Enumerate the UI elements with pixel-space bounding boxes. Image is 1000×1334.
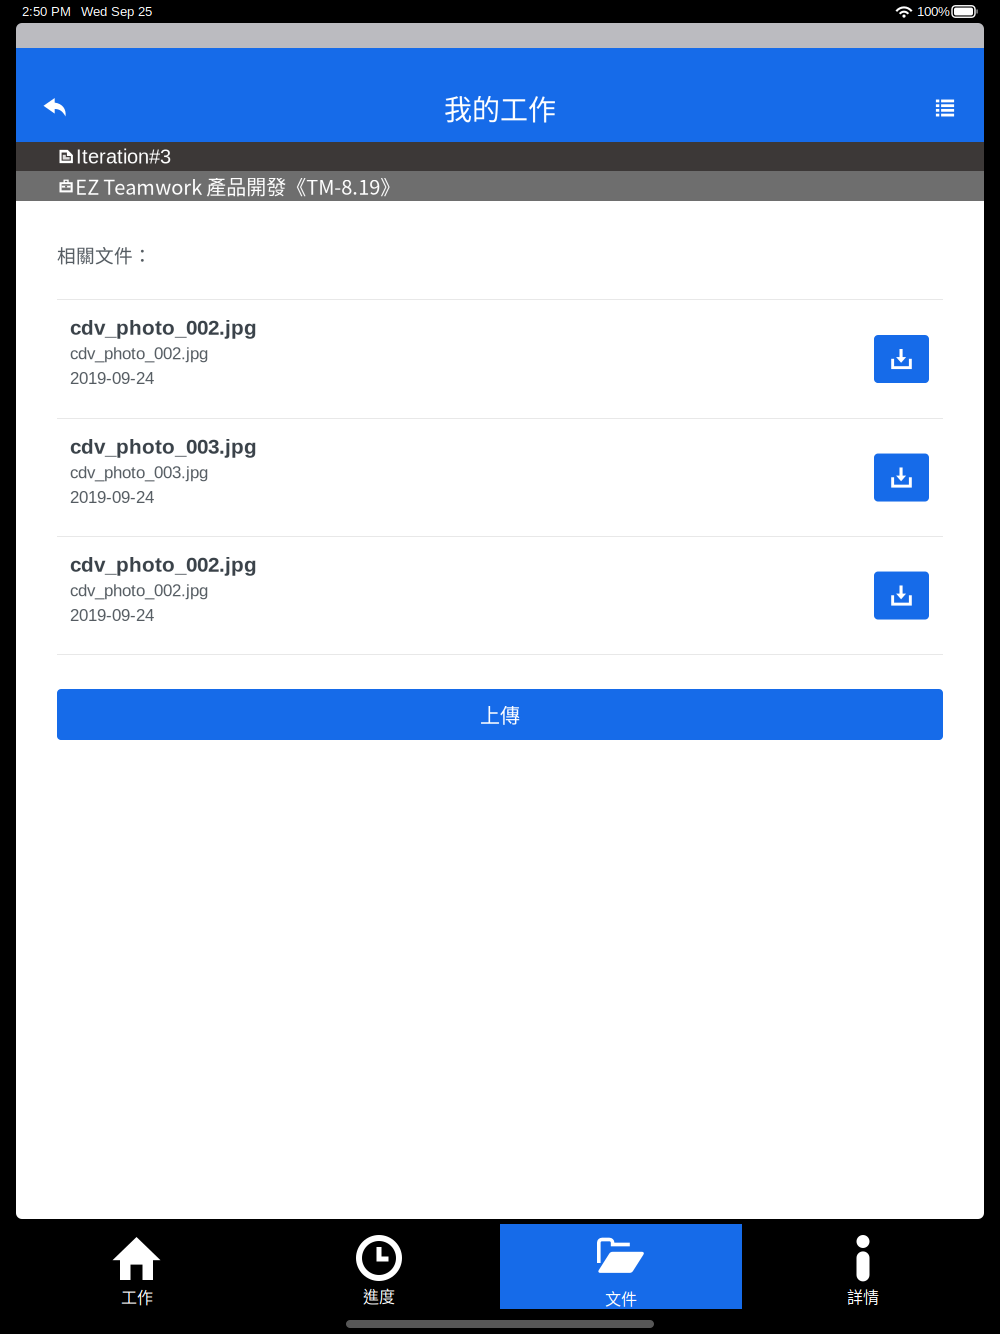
button[interactable]: Menu (906, 48, 984, 142)
staticText: 詳情 (847, 1284, 879, 1308)
button[interactable]: 詳情 (742, 1224, 984, 1309)
staticText: Wed Sep 25 (81, 4, 152, 19)
staticText: 文件 (605, 1286, 637, 1310)
button[interactable]: 進度 (258, 1224, 500, 1309)
staticText: 2019-09-24 (70, 488, 154, 507)
button[interactable]: 上傳 (57, 689, 943, 740)
staticText: 2019-09-24 (70, 606, 154, 625)
button[interactable]: Download cdv_photo_002.jpg (874, 571, 929, 619)
staticText: 我的工作 (444, 88, 556, 128)
staticText: 2:50 PM (22, 4, 71, 19)
staticText: cdv_photo_002.jpg (70, 344, 208, 363)
staticText: 相關文件： (57, 241, 152, 268)
staticText: 2019-09-24 (70, 369, 154, 388)
staticText: 工作 (121, 1285, 153, 1308)
button[interactable]: 文件 (500, 1224, 742, 1309)
staticText: 上傳 (480, 700, 520, 729)
staticText: cdv_photo_002.jpg (70, 316, 257, 339)
staticText: Iteration#3 (76, 145, 171, 168)
button[interactable]: 工作 (16, 1224, 258, 1309)
button[interactable]: Download cdv_photo_002.jpg (874, 335, 929, 383)
staticText: cdv_photo_002.jpg (70, 553, 257, 576)
staticText: cdv_photo_003.jpg (70, 463, 208, 482)
staticText: EZ Teamwork 產品開發《TM-8.19》 (75, 171, 400, 200)
staticText: cdv_photo_002.jpg (70, 581, 208, 600)
button[interactable]: Download cdv_photo_003.jpg (874, 453, 929, 501)
button[interactable]: Iteration#3 (16, 142, 984, 171)
button[interactable]: EZ Teamwork 產品開發《TM-8.19》 (16, 171, 984, 201)
staticText: 100% (917, 4, 950, 19)
staticText: 進度 (363, 1284, 395, 1307)
staticText: cdv_photo_003.jpg (70, 435, 257, 458)
button[interactable]: Back (16, 48, 94, 142)
